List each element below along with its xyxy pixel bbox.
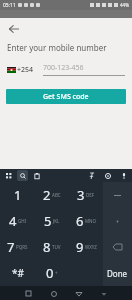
staticText: +254 [17,65,34,75]
button[interactable]: back [103,234,132,260]
staticText: + [55,270,58,276]
staticText: ABC [52,192,61,198]
staticText: Enter your mobile number [7,42,107,53]
staticText: 5 [44,212,52,230]
staticText: 9 [76,238,84,256]
staticText: 1 [14,186,22,204]
staticText: 700-123-456 [43,63,84,73]
staticText: *# [12,266,24,280]
button[interactable]: Done [103,260,132,286]
button[interactable]: +254 [7,65,34,75]
staticText: WXYZ [85,244,97,250]
button[interactable]: Voice input [118,170,129,181]
button[interactable]: 7 [0,234,35,260]
button[interactable]: 3 [69,182,103,208]
staticText: 3 [77,186,85,204]
button[interactable]: Recents [22,287,35,300]
button[interactable]: *# [0,260,35,286]
button[interactable]: Get SMS code [6,89,126,104]
staticText: 6 [76,212,84,230]
button[interactable]: Search [17,170,28,181]
staticText: Get SMS code [43,92,89,102]
button[interactable]: 700-123-456 [43,63,125,76]
button[interactable]: minus [103,182,132,208]
button[interactable]: 5 [35,208,69,234]
button[interactable]: 6 [69,208,103,234]
staticText: TUV [52,244,61,250]
button[interactable]: 4 [0,208,35,234]
button[interactable]: Settings [102,170,113,181]
button[interactable]: 2 [35,182,69,208]
staticText: 8 [43,238,51,256]
button[interactable]: 8 [35,234,69,260]
staticText: DEF [86,192,95,198]
button[interactable]: 1 [0,182,35,208]
button[interactable]: Text format [86,170,97,181]
staticText: 0 [46,264,54,282]
staticText: 7 [7,238,15,256]
staticText: MNO [85,218,97,224]
button[interactable]: Back [6,21,22,37]
staticText: GHI [18,218,27,224]
staticText: 4 [9,212,17,230]
button[interactable]: Apps [3,170,14,181]
button[interactable]: dot [103,208,132,234]
button[interactable]: Clipboard [31,170,42,181]
button[interactable]: Home [47,287,60,300]
staticText: 44% [120,2,129,8]
staticText: 05:11 [3,2,16,9]
button[interactable]: Hide keyboard [97,287,110,300]
staticText: 2 [43,186,51,204]
button[interactable]: Back [72,287,85,300]
button[interactable]: 9 [69,234,103,260]
staticText: JKL [53,218,60,224]
button[interactable]: 0 [35,260,69,286]
staticText: PQRS [16,244,28,250]
staticText: Done [107,268,128,279]
